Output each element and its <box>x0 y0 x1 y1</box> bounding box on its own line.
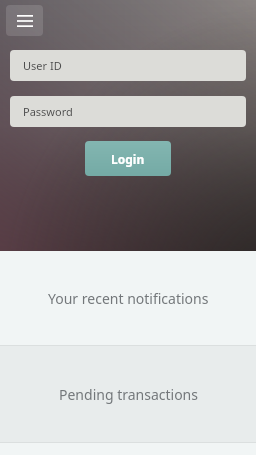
staticText: User ID <box>23 58 62 73</box>
staticText: Password <box>23 104 73 119</box>
staticText: Pending transactions <box>59 385 198 404</box>
staticText: Your recent notifications <box>48 289 209 308</box>
button[interactable]: Login <box>85 141 171 176</box>
button[interactable]: Your recent notifications <box>0 251 256 345</box>
button[interactable]: User ID <box>10 50 246 81</box>
staticText: Login <box>111 151 145 167</box>
button[interactable]: Pending transactions <box>0 346 256 442</box>
button[interactable]: Open navigation menu <box>6 5 43 36</box>
button[interactable]: Password <box>10 96 246 127</box>
